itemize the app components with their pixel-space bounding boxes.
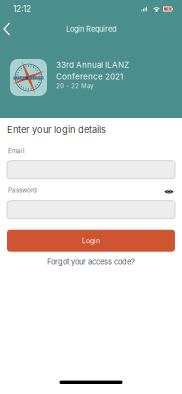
staticText: Email <box>8 147 25 155</box>
button[interactable]: Show password <box>163 186 175 195</box>
button[interactable]: Back <box>0 18 16 40</box>
staticText: Password <box>8 186 37 194</box>
button[interactable]: Forgot your access code? <box>7 256 175 268</box>
staticText: Enter your login details <box>7 124 106 135</box>
button[interactable]: Login <box>7 230 175 252</box>
staticText: 33rd Annual ILANZ <box>56 60 129 70</box>
staticText: Conference 2021 <box>56 72 123 81</box>
staticText: 20 - 22 May <box>56 82 93 90</box>
staticText: Login <box>82 236 100 245</box>
staticText: Forgot your access code? <box>47 257 135 266</box>
staticText: 12:12 <box>13 4 31 14</box>
staticText: TUHURA DISCOVER <box>13 76 43 80</box>
staticText: Login Required <box>66 25 116 33</box>
